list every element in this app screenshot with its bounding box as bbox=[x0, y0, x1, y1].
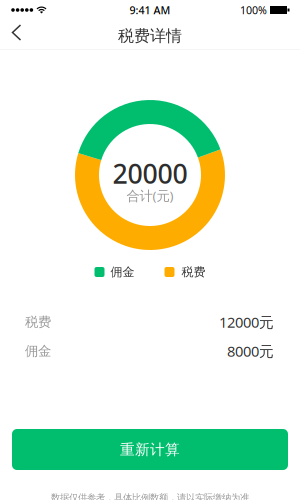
staticText: 8000元 bbox=[227, 341, 274, 361]
staticText: 税费详情 bbox=[118, 26, 182, 46]
staticText: 税费 bbox=[181, 265, 205, 279]
button[interactable] bbox=[0, 18, 22, 47]
staticText: 合计(元) bbox=[126, 187, 173, 204]
staticText: 12000元 bbox=[219, 312, 274, 332]
staticText: 重新计算 bbox=[120, 440, 180, 458]
staticText: 100% bbox=[240, 3, 267, 17]
staticText: 20000 bbox=[112, 156, 187, 191]
staticText: 9:41 AM bbox=[129, 3, 170, 17]
staticText: 佣金 bbox=[25, 343, 51, 359]
staticText: 税费 bbox=[25, 314, 51, 330]
staticText: 数据仅供参考，具体比例数额，请以实际缴纳为准 bbox=[51, 492, 249, 500]
staticText: 佣金 bbox=[110, 265, 134, 279]
button[interactable]: 重新计算 bbox=[12, 429, 288, 470]
